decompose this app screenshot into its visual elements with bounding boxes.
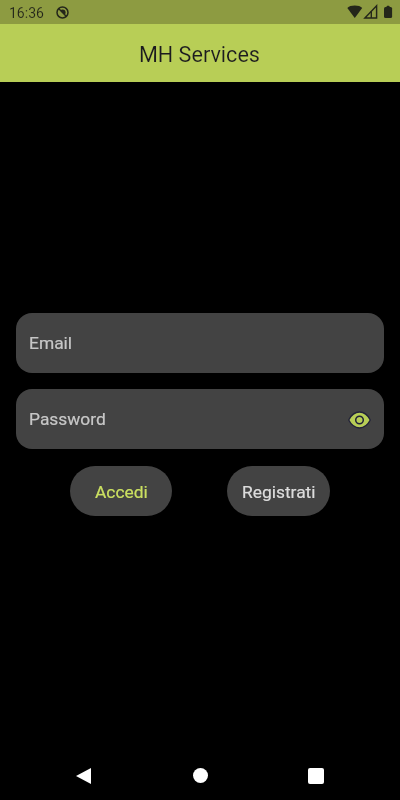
button[interactable]: Accedi <box>70 466 172 516</box>
staticText: MH Services <box>139 42 261 67</box>
button[interactable]: Back <box>63 755 104 796</box>
button[interactable]: Email <box>16 313 384 373</box>
button[interactable]: Show password <box>343 404 375 436</box>
staticText: Password <box>29 409 106 429</box>
staticText: 16:36 <box>9 5 44 21</box>
staticText: Accedi <box>95 482 148 502</box>
button[interactable]: Password <box>16 389 384 449</box>
button[interactable]: Recent apps <box>295 755 336 796</box>
button[interactable]: Registrati <box>227 466 330 516</box>
staticText: Registrati <box>242 482 316 502</box>
staticText: Email <box>29 333 73 353</box>
button[interactable]: Home <box>180 755 221 796</box>
